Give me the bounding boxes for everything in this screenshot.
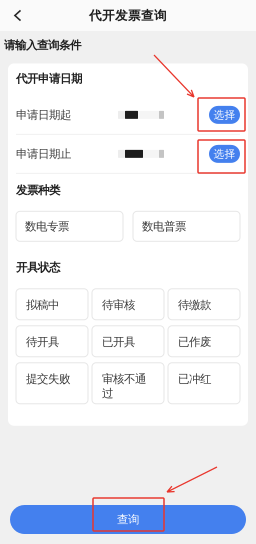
button[interactable]: 审核不通过 xyxy=(92,363,164,404)
staticText: 申请日期止 xyxy=(16,147,71,161)
staticText: 已开具 xyxy=(102,335,135,349)
staticText: 开具状态 xyxy=(16,260,60,275)
button[interactable]: 已冲红 xyxy=(168,363,240,404)
button[interactable]: 拟稿中 xyxy=(16,289,88,320)
staticText: 发票种类 xyxy=(16,183,60,197)
staticText: 审核不通过 xyxy=(102,372,146,401)
button[interactable]: 数电普票 xyxy=(133,211,240,241)
staticText: 待缴款 xyxy=(178,298,211,312)
staticText: 选择 xyxy=(213,147,235,161)
staticText: 数电专票 xyxy=(25,219,69,233)
button[interactable]: 待缴款 xyxy=(168,289,240,320)
staticText: 待开具 xyxy=(26,335,59,349)
staticText: 代开申请日期 xyxy=(16,71,82,86)
staticText: 提交失败 xyxy=(26,372,70,386)
button[interactable]: 提交失败 xyxy=(16,363,88,404)
staticText: 选择 xyxy=(213,108,235,122)
staticText: 代开发票查询 xyxy=(89,8,167,23)
staticText: 拟稿中 xyxy=(26,298,59,312)
staticText: 申请日期起 xyxy=(16,108,71,122)
button[interactable]: 已作废 xyxy=(168,326,240,357)
button[interactable]: 已开具 xyxy=(92,326,164,357)
staticText: 已作废 xyxy=(178,335,211,349)
button[interactable]: 查询 xyxy=(10,505,246,534)
button[interactable]: Back xyxy=(3,0,33,31)
staticText: 待审核 xyxy=(102,298,135,312)
staticText: 数电普票 xyxy=(142,219,186,233)
staticText: 请输入查询条件 xyxy=(4,38,81,52)
button[interactable]: 选择 xyxy=(209,145,240,163)
button[interactable]: 选择 xyxy=(209,106,240,124)
button[interactable]: 待开具 xyxy=(16,326,88,357)
button[interactable]: 数电专票 xyxy=(16,211,123,241)
staticText: 查询 xyxy=(117,512,139,527)
staticText: 已冲红 xyxy=(178,372,211,386)
button[interactable]: 待审核 xyxy=(92,289,164,320)
